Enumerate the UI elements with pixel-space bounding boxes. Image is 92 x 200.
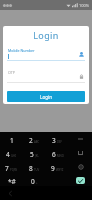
staticText: 5 xyxy=(30,150,34,159)
button[interactable]: Tab xyxy=(69,146,92,160)
staticText: 6 xyxy=(52,150,56,159)
staticText: GHI xyxy=(11,154,17,158)
staticText: MNO xyxy=(57,154,64,158)
staticText: + xyxy=(36,181,38,185)
button[interactable]: 7 xyxy=(0,160,23,174)
button[interactable]: Back xyxy=(5,188,16,199)
button[interactable]: 3 xyxy=(46,132,69,146)
button[interactable]: Emoji xyxy=(69,160,92,174)
staticText: *# xyxy=(8,177,16,186)
button[interactable]: 1 xyxy=(0,132,23,146)
staticText: JKL xyxy=(35,154,39,158)
staticText: OTP xyxy=(8,70,15,75)
button[interactable]: 2 xyxy=(23,132,46,146)
button[interactable]: 8 xyxy=(23,160,46,174)
staticText: ABC xyxy=(34,140,40,144)
staticText: 2 xyxy=(29,136,33,145)
staticText: Login xyxy=(3,29,89,41)
staticText: 3 xyxy=(52,136,56,145)
staticText: 7 xyxy=(5,164,9,173)
staticText: Mobile Number xyxy=(8,48,35,53)
button[interactable]: 4 xyxy=(0,146,23,160)
button[interactable]: Backspace xyxy=(69,132,92,146)
staticText: 8 xyxy=(29,164,33,173)
staticText: WXYZ xyxy=(56,168,64,172)
staticText: PQRS xyxy=(10,168,18,172)
staticText: 1 xyxy=(10,136,14,145)
staticText: Login xyxy=(40,94,53,100)
button[interactable]: 5 xyxy=(23,146,46,160)
button[interactable]: Login xyxy=(7,91,85,102)
button[interactable]: 6 xyxy=(46,146,69,160)
staticText: 100% xyxy=(79,3,90,8)
button[interactable]: *# xyxy=(0,174,23,186)
staticText: 4 xyxy=(6,150,10,159)
staticText: TUV xyxy=(34,168,40,172)
staticText: 0 xyxy=(31,177,35,186)
button[interactable]: 9 xyxy=(46,160,69,174)
staticText: 9 xyxy=(51,164,55,173)
staticText: DEF xyxy=(57,140,63,144)
button[interactable]: 0 xyxy=(23,174,46,186)
button[interactable]: Enter xyxy=(69,174,92,186)
